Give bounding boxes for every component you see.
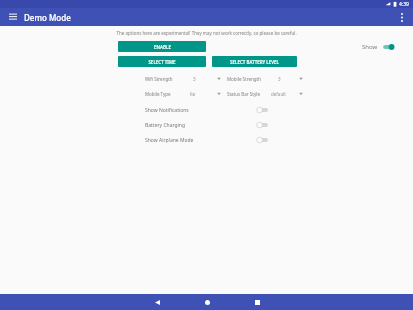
button[interactable]: Recent apps	[246, 294, 268, 310]
staticText: lte	[190, 91, 196, 97]
button[interactable]: Show Notifications	[145, 105, 270, 115]
staticText: Show Notifications	[145, 107, 189, 114]
button[interactable]: Home	[196, 294, 218, 310]
button[interactable]: Status Bar Style	[227, 89, 303, 98]
staticText: Wifi Strength	[145, 76, 173, 82]
button[interactable]: Open navigation drawer	[6, 10, 20, 24]
staticText: 3	[193, 76, 196, 82]
button[interactable]	[256, 121, 270, 129]
staticText: Status Bar Style	[227, 91, 260, 97]
staticText: Show Airplane Mode	[145, 137, 194, 144]
button[interactable]	[256, 136, 270, 144]
button[interactable]: SELECT BATTERY LEVEL	[212, 56, 297, 67]
staticText: Mobile Strength	[227, 76, 261, 82]
staticText: Show	[362, 43, 378, 51]
staticText: Mobile Type	[145, 91, 171, 97]
staticText: ENABLE	[154, 44, 171, 50]
button[interactable]: More options	[395, 10, 409, 24]
staticText: default	[271, 91, 286, 97]
button[interactable]	[256, 106, 270, 114]
button[interactable]: Battery Charging	[145, 120, 270, 130]
button[interactable]: SELECT TIME	[118, 56, 206, 67]
staticText: 3	[278, 76, 281, 82]
staticText: The options here are experimental! They …	[116, 30, 297, 36]
button[interactable]: Wifi Strength	[145, 74, 221, 83]
staticText: SELECT TIME	[148, 59, 176, 65]
button[interactable]	[382, 43, 396, 51]
button[interactable]: Mobile Strength	[227, 74, 303, 83]
button[interactable]: Back	[146, 294, 168, 310]
staticText: Demo Mode	[24, 12, 71, 23]
staticText: Battery Charging	[145, 122, 186, 129]
staticText: 4:39	[399, 1, 409, 8]
button[interactable]: Show Airplane Mode	[145, 135, 270, 145]
button[interactable]: Mobile Type	[145, 89, 221, 98]
staticText: SELECT BATTERY LEVEL	[230, 59, 279, 65]
button[interactable]: ENABLE	[118, 41, 206, 52]
